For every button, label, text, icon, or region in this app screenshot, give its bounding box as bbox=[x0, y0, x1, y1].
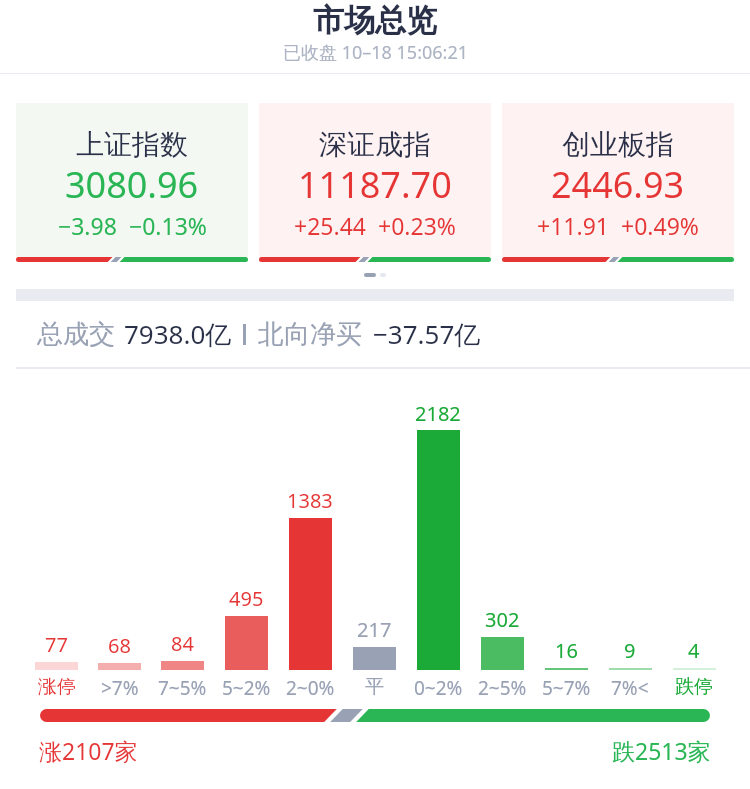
button[interactable]: 上证指数 bbox=[16, 103, 248, 262]
staticText: 5~2% bbox=[222, 675, 271, 701]
staticText: 84 bbox=[171, 630, 194, 657]
staticText: 217 bbox=[357, 616, 392, 643]
staticText: 2~0% bbox=[286, 675, 335, 701]
staticText: 16 bbox=[555, 637, 578, 664]
button[interactable]: 创业板指 bbox=[502, 103, 734, 262]
staticText: −3.98 bbox=[58, 210, 117, 241]
staticText: 5~7% bbox=[542, 675, 591, 701]
staticText: 68 bbox=[108, 632, 131, 659]
staticText: +11.91 bbox=[537, 210, 609, 241]
staticText: 2182 bbox=[415, 400, 461, 426]
staticText: 0~2% bbox=[414, 675, 463, 701]
staticText: 创业板指 bbox=[562, 127, 674, 162]
staticText: −0.13% bbox=[129, 210, 207, 241]
staticText: 跌2513家 bbox=[612, 735, 711, 766]
staticText: 9 bbox=[624, 637, 636, 664]
staticText: 跌停 bbox=[675, 675, 713, 699]
staticText: 市场总览 bbox=[313, 1, 437, 40]
staticText: 涨停 bbox=[38, 675, 76, 699]
staticText: 495 bbox=[229, 585, 264, 612]
staticText: +0.49% bbox=[621, 210, 699, 241]
staticText: 上证指数 bbox=[76, 127, 188, 162]
staticText: 深证成指 bbox=[319, 127, 431, 162]
staticText: +0.23% bbox=[378, 210, 456, 241]
staticText: 7~5% bbox=[158, 675, 207, 701]
button[interactable]: 深证成指 bbox=[259, 103, 491, 262]
staticText: 11187.70 bbox=[298, 160, 452, 209]
staticText: 302 bbox=[485, 606, 520, 633]
staticText: 北向净买 bbox=[258, 318, 362, 351]
staticText: 7%< bbox=[611, 675, 649, 701]
staticText: 77 bbox=[45, 631, 68, 658]
button[interactable]: 总成交 bbox=[37, 316, 750, 352]
staticText: 3080.96 bbox=[65, 160, 199, 209]
staticText: 已收盘 10–18 15:06:21 bbox=[283, 40, 468, 65]
staticText: 2446.93 bbox=[551, 160, 685, 209]
staticText: −37.57亿 bbox=[373, 316, 481, 352]
staticText: 总成交 bbox=[37, 318, 115, 351]
staticText: 1383 bbox=[287, 487, 333, 514]
staticText: 7938.0亿 bbox=[124, 316, 232, 352]
staticText: +25.44 bbox=[294, 210, 366, 241]
staticText: 2~5% bbox=[478, 675, 527, 701]
staticText: >7% bbox=[101, 675, 139, 701]
staticText: 涨2107家 bbox=[39, 735, 138, 766]
staticText: 平 bbox=[365, 675, 384, 699]
staticText: 4 bbox=[688, 637, 700, 664]
